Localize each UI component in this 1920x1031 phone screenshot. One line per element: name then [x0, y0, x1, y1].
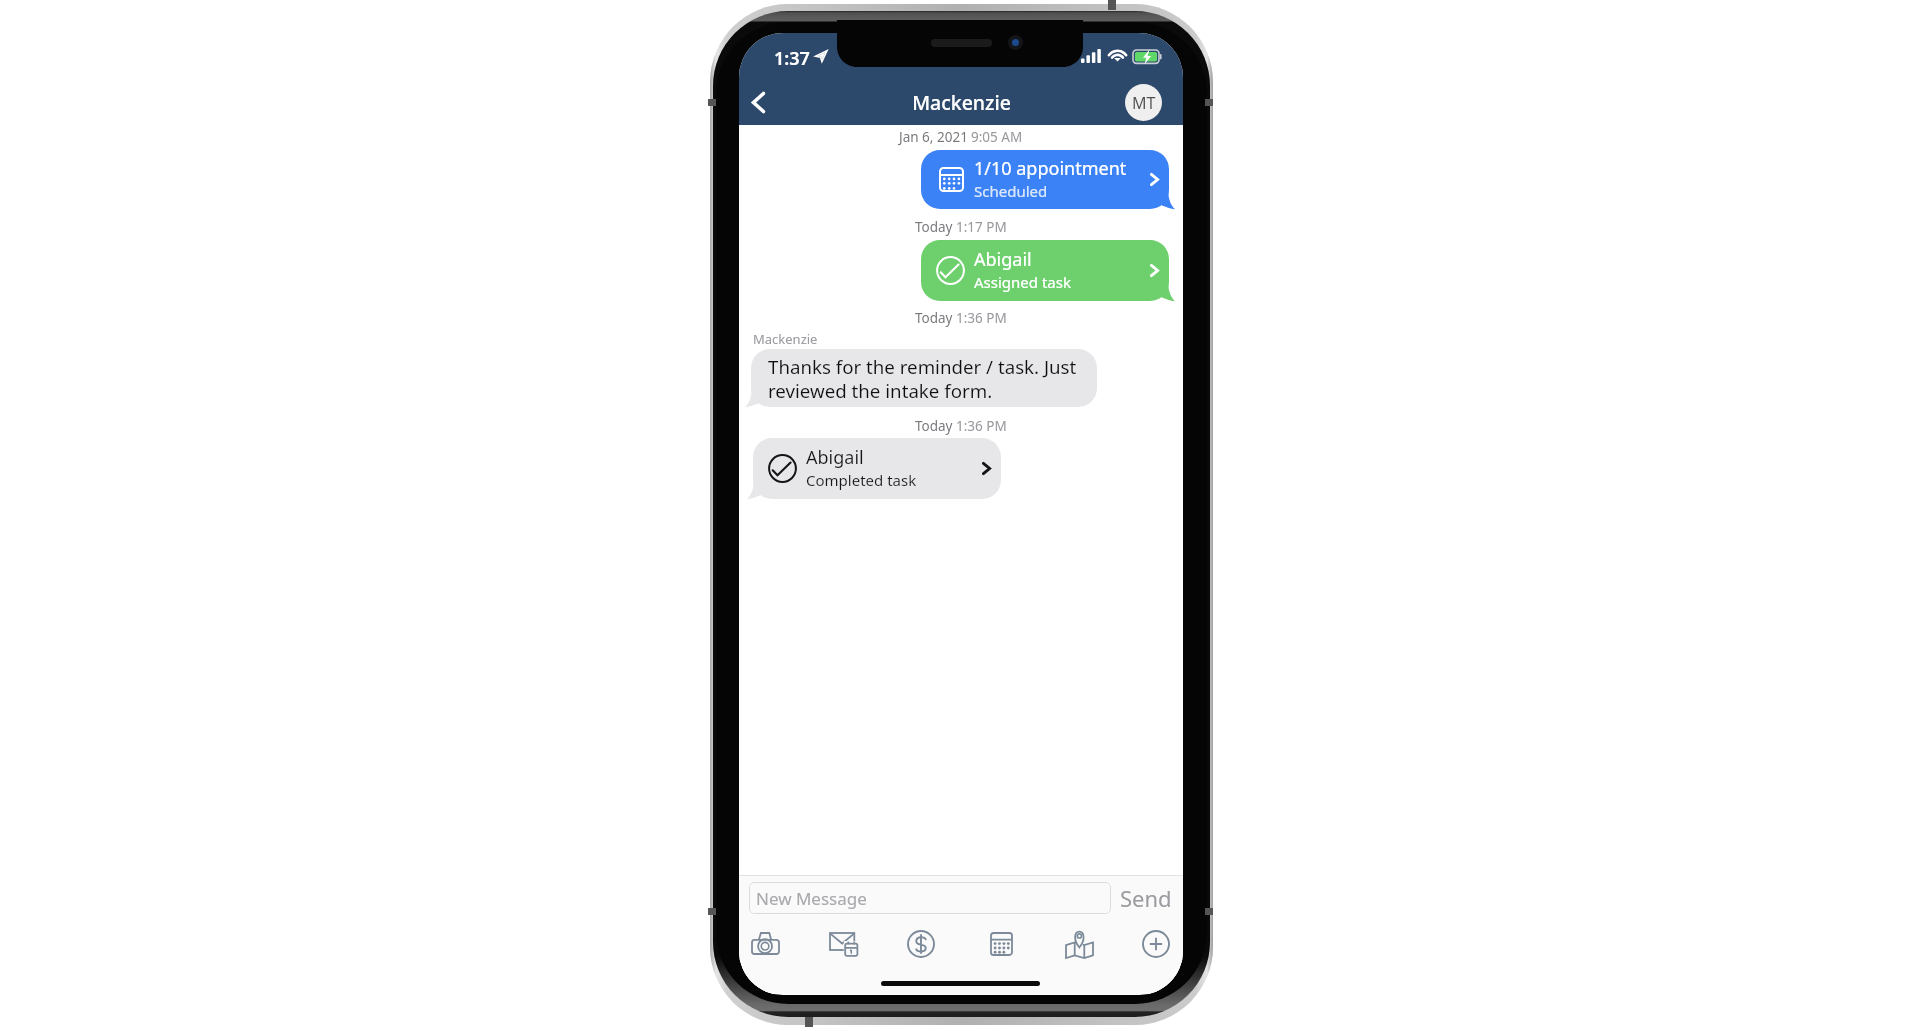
- button[interactable]: Back: [742, 81, 775, 124]
- button[interactable]: Send: [1119, 881, 1173, 915]
- staticText: 1:36 PM: [956, 309, 1007, 327]
- button[interactable]: Abigail: [921, 240, 1169, 301]
- button[interactable]: Calendar: [978, 921, 1024, 967]
- button[interactable]: Thanks for the reminder / task. Just rev…: [751, 349, 1097, 407]
- button[interactable]: Camera: [743, 921, 789, 967]
- staticText: MT: [1132, 92, 1156, 114]
- staticText: 1:17 PM: [956, 218, 1007, 236]
- button[interactable]: New Message: [749, 882, 1111, 914]
- staticText: 1:36 PM: [956, 417, 1007, 435]
- button[interactable]: Email: [820, 921, 866, 967]
- button[interactable]: Map: [1056, 921, 1102, 967]
- staticText: Abigail: [806, 445, 864, 470]
- staticText: Send: [1120, 883, 1172, 913]
- staticText: 1:37: [774, 46, 810, 71]
- staticText: New Message: [756, 887, 867, 910]
- staticText: 9:05 AM: [971, 128, 1023, 146]
- staticText: Mackenzie: [753, 330, 818, 348]
- button[interactable]: Profile: [1125, 84, 1162, 121]
- staticText: Scheduled: [974, 181, 1048, 201]
- button[interactable]: 1/10 appointment: [921, 150, 1169, 209]
- staticText: Completed task: [806, 470, 917, 490]
- staticText: Today: [915, 417, 953, 435]
- staticText: 1/10 appointment: [974, 156, 1127, 181]
- staticText: Mackenzie: [912, 89, 1011, 116]
- staticText: Assigned task: [974, 272, 1071, 292]
- staticText: Abigail: [974, 247, 1032, 272]
- staticText: Thanks for the reminder / task. Just rev…: [768, 354, 1077, 403]
- staticText: Today: [915, 218, 953, 236]
- button[interactable]: Abigail: [753, 438, 1001, 499]
- button[interactable]: Payment: [898, 921, 944, 967]
- staticText: Today: [915, 309, 953, 327]
- button[interactable]: Add: [1133, 921, 1179, 967]
- staticText: Jan 6, 2021: [899, 128, 968, 146]
